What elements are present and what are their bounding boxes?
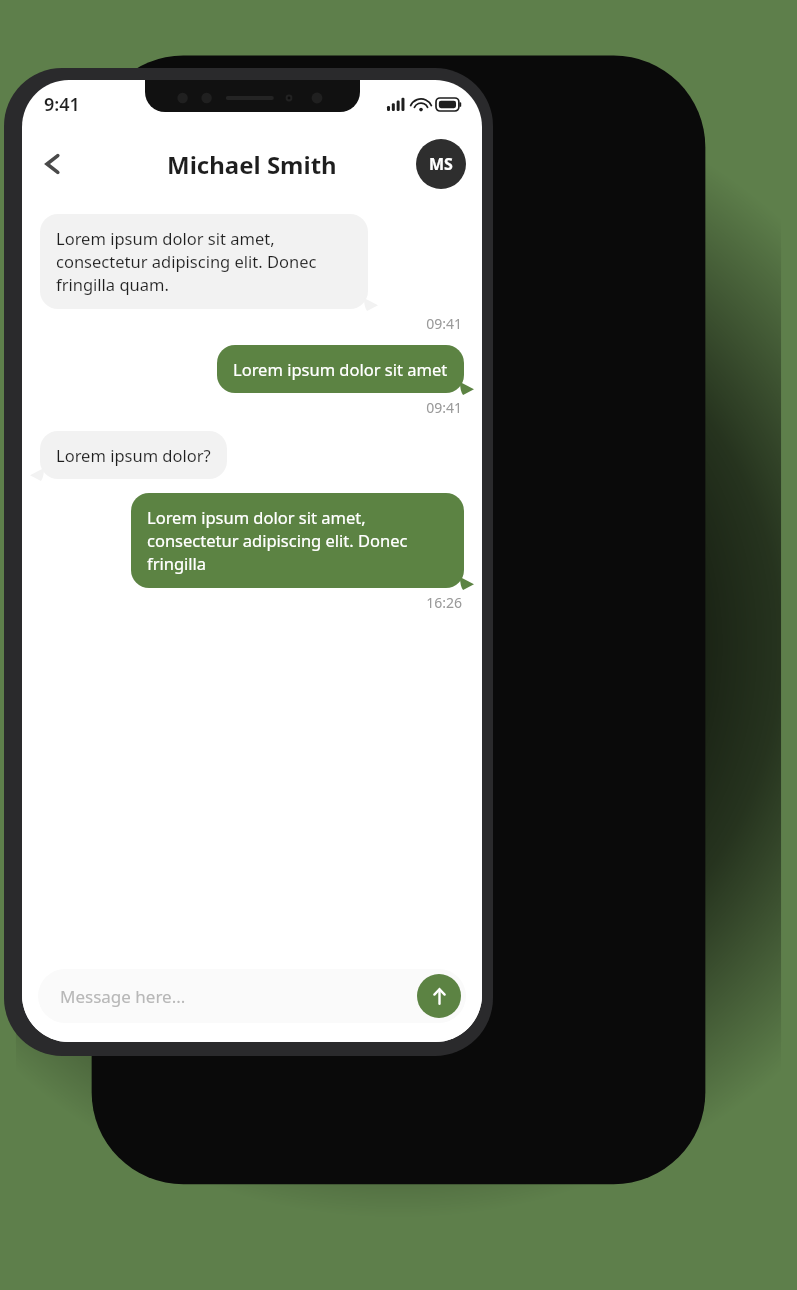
- button[interactable]: Back: [30, 141, 76, 187]
- staticText: Lorem ipsum dolor?: [56, 444, 211, 466]
- button[interactable]: Lorem ipsum dolor sit amet, consectetur …: [40, 214, 368, 309]
- button[interactable]: Lorem ipsum dolor sit amet, consectetur …: [131, 493, 464, 588]
- button[interactable]: Lorem ipsum dolor sit amet: [217, 345, 464, 393]
- staticText: Lorem ipsum dolor sit amet, consectetur …: [56, 227, 352, 296]
- staticText: Message here...: [60, 985, 186, 1008]
- button[interactable]: Send: [417, 974, 461, 1018]
- staticText: Lorem ipsum dolor sit amet, consectetur …: [147, 506, 448, 575]
- staticText: Lorem ipsum dolor sit amet: [233, 358, 448, 380]
- button[interactable]: Message here...: [38, 969, 466, 1023]
- staticText: 9:41: [44, 92, 80, 117]
- staticText: 16:26: [40, 593, 462, 612]
- staticText: 09:41: [40, 398, 462, 417]
- staticText: 09:41: [40, 314, 462, 333]
- staticText: Michael Smith: [167, 148, 337, 181]
- button[interactable]: MS: [416, 139, 466, 189]
- staticText: MS: [429, 153, 453, 175]
- button[interactable]: Lorem ipsum dolor?: [40, 431, 227, 479]
